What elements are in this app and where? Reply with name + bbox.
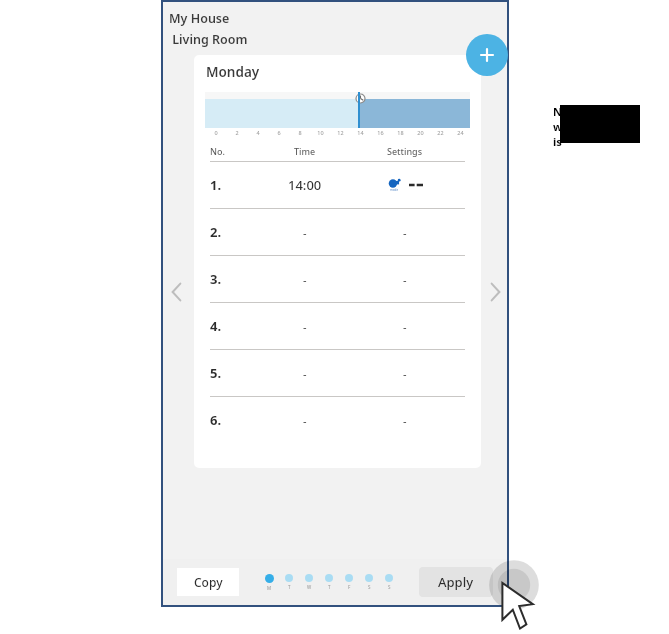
button[interactable]: Add schedule [466,34,508,76]
staticText: 12 [337,129,344,136]
button[interactable]: F [339,574,359,590]
button[interactable]: W [299,574,319,590]
staticText: S [388,584,391,590]
staticText: 18 [397,129,404,136]
button[interactable]: S [359,574,379,590]
staticText: - [403,366,407,381]
staticText: 1. [210,176,222,194]
staticText: - [403,413,407,428]
button[interactable]: T [279,574,299,590]
staticText: My House [169,10,230,27]
staticText: - [303,413,307,428]
staticText: 6 [277,129,281,136]
button[interactable]: Copy [177,568,239,596]
button[interactable]: Previous day [165,275,187,309]
staticText: Settings [387,145,423,157]
button[interactable]: 4. [194,302,481,349]
staticText: 4. [210,317,222,335]
staticText: 5. [210,364,222,382]
staticText: F [348,584,351,590]
staticText: is [553,134,562,149]
button[interactable]: M [259,574,279,591]
staticText: W [307,584,312,590]
button[interactable]: 2. [194,208,481,255]
staticText: 14 [357,129,364,136]
staticText: T [328,584,331,590]
staticText: 4 [256,129,260,136]
staticText: Living Room [169,31,248,48]
staticText: - [303,366,307,381]
staticText: 3. [210,270,222,288]
staticText: - [403,272,407,287]
staticText: 14:00 [288,176,322,194]
staticText: 10 [317,129,324,136]
button[interactable]: Apply [419,567,493,597]
staticText: S [368,584,371,590]
staticText: Apply [438,573,474,591]
staticText: - [403,225,407,240]
staticText: 2 [235,129,239,136]
staticText: - [303,319,307,334]
button[interactable]: 5. [194,349,481,396]
staticText: mode [390,188,399,192]
staticText: N [553,104,562,119]
button[interactable]: Next day [484,275,506,309]
button[interactable]: 3. [194,255,481,302]
staticText: - [303,272,307,287]
button[interactable]: 6. [194,396,481,443]
staticText: 16 [377,129,384,136]
staticText: - [303,225,307,240]
button[interactable]: S [379,574,399,590]
staticText: Monday [206,63,260,81]
staticText: 22 [437,129,444,136]
staticText: Time [294,145,316,157]
button[interactable]: T [319,574,339,590]
staticText: 24 [457,129,464,136]
staticText: w [553,119,563,134]
staticText: No. [210,145,225,157]
button[interactable]: 1. [194,161,481,208]
staticText: 2. [210,223,222,241]
staticText: Copy [194,574,223,590]
staticText: 0 [214,129,218,136]
staticText: T [288,584,291,590]
staticText: 8 [298,129,302,136]
staticText: 6. [210,411,222,429]
staticText: M [267,585,272,591]
staticText: 20 [417,129,424,136]
staticText: - [403,319,407,334]
